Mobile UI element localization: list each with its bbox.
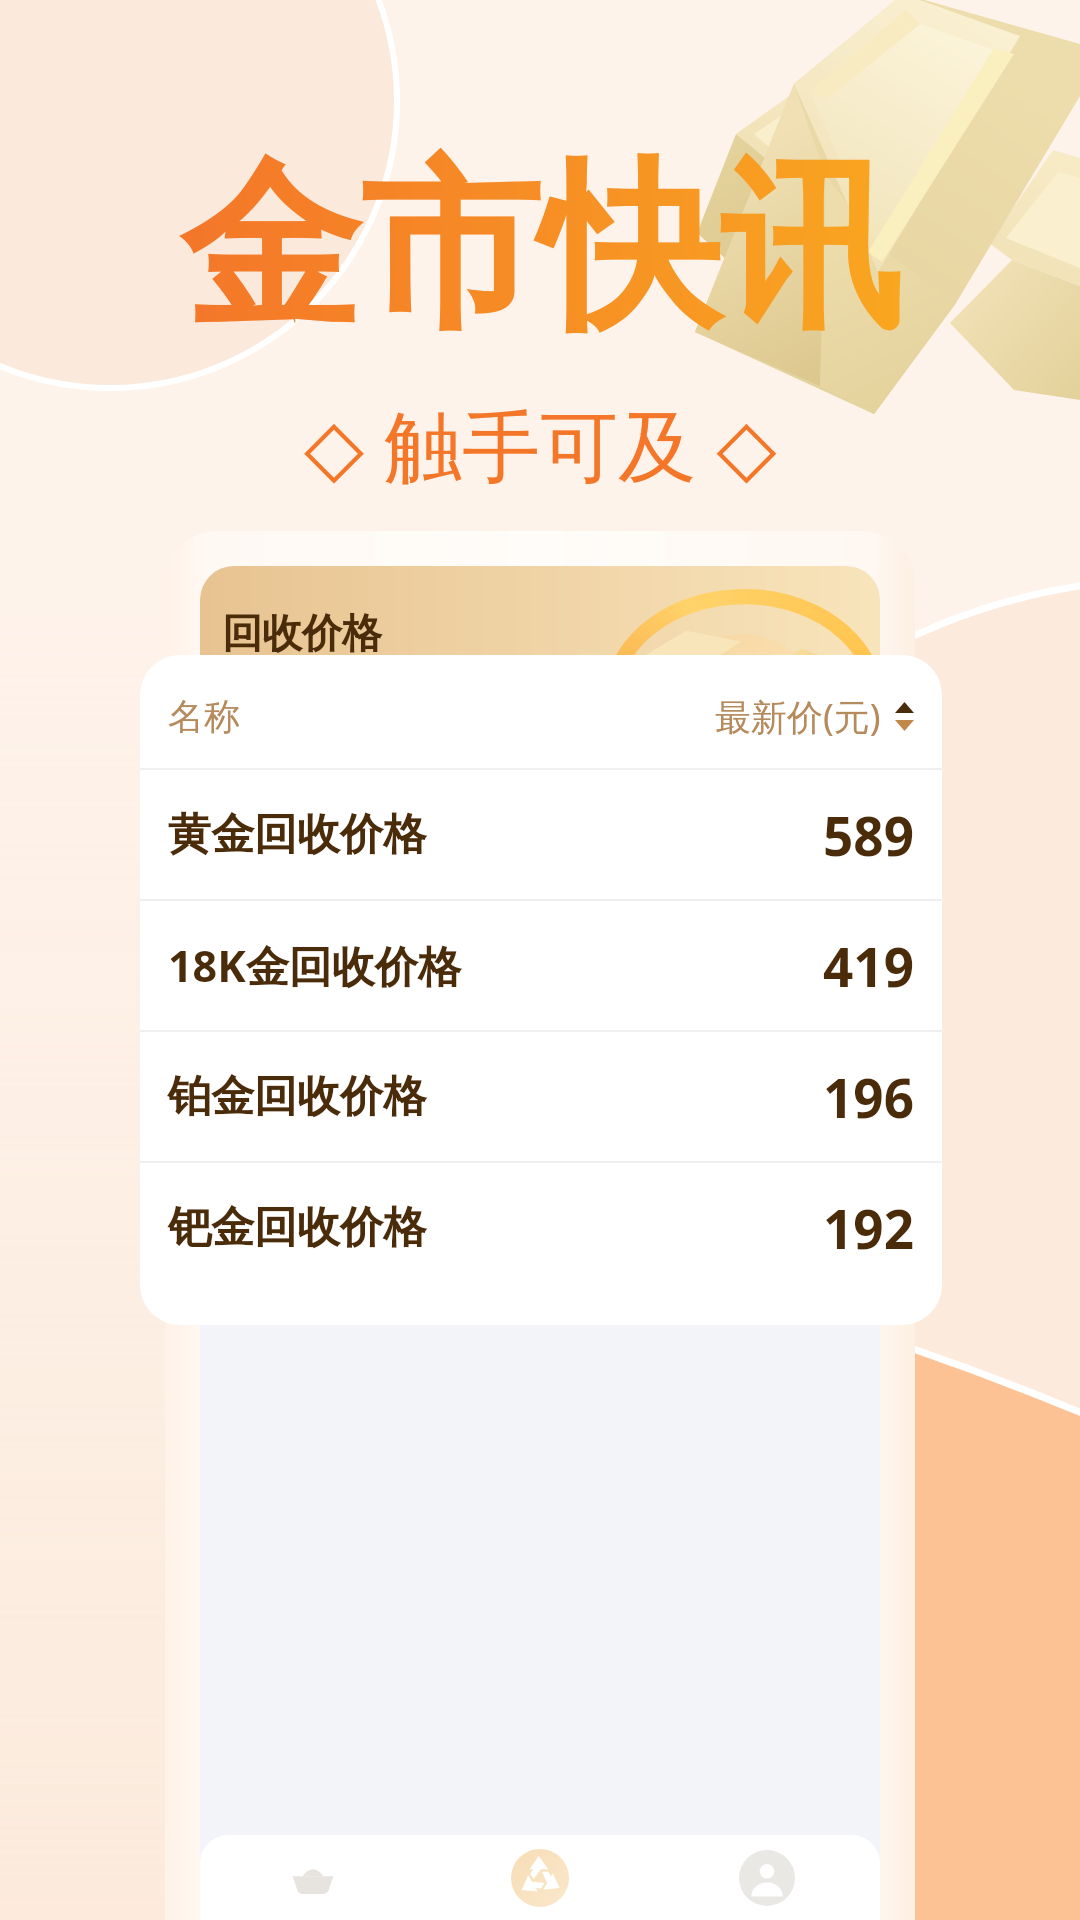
staticText: 钯金回收价格 <box>168 1201 426 1255</box>
button[interactable]: 18K金回收价格 <box>140 901 942 1030</box>
staticText: 419 <box>823 930 914 1002</box>
staticText: 黄金回收价格 <box>168 808 426 862</box>
staticText: 196 <box>823 1061 914 1133</box>
button[interactable]: 钯金回收价格 <box>140 1163 942 1292</box>
staticText: 192 <box>823 1192 914 1264</box>
button[interactable]: 黄金回收价格 <box>140 770 942 899</box>
button[interactable]: Recycle <box>426 1835 653 1920</box>
staticText: 18K金回收价格 <box>168 936 461 995</box>
staticText: 回收价格 <box>222 608 382 658</box>
staticText: 金市快讯 <box>180 136 900 363</box>
staticText: 铂金回收价格 <box>168 1070 426 1124</box>
button[interactable]: Profile <box>653 1835 880 1920</box>
staticText: 名称 <box>168 694 240 739</box>
staticText: ◇ 触手可及 ◇ <box>304 391 777 498</box>
staticText: 589 <box>823 799 914 871</box>
staticText: 最新价(元) <box>715 692 881 741</box>
button[interactable]: Gold ingot <box>200 1835 426 1920</box>
button[interactable]: 铂金回收价格 <box>140 1032 942 1161</box>
